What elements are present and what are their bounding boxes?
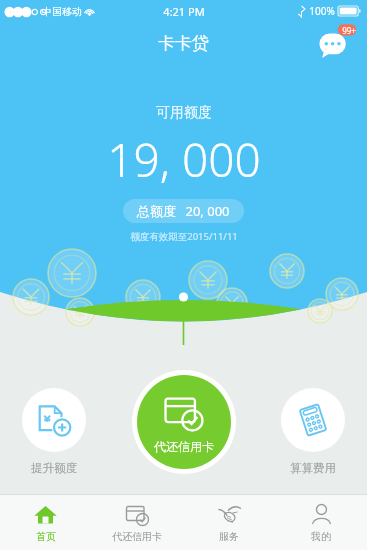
staticText: 4:21 PM [163,4,205,19]
button[interactable]: 服务 [183,495,275,550]
staticText: 99+ [342,25,356,36]
staticText: 额度有效期至2015/11/11 [130,230,238,243]
staticText: 代还信用卡 [112,530,162,543]
staticText: 可用额度 [156,104,212,122]
button[interactable]: 代还信用卡 [91,495,183,550]
staticText: 中国移动 [42,5,82,18]
staticText: 总额度 [137,203,176,219]
staticText: 首页 [36,530,56,543]
staticText: 卡卡贷 [158,33,209,54]
button[interactable]: 首页 [0,495,91,550]
staticText: 算算费用 [290,461,336,475]
button[interactable]: 总额度 [123,199,244,223]
button[interactable]: 提升额度 [22,388,86,475]
button[interactable]: 代还信用卡 [132,370,236,474]
button[interactable]: 算算费用 [281,388,345,475]
staticText: 代还信用卡 [154,439,214,454]
staticText: 我的 [311,530,331,543]
staticText: 提升额度 [31,461,77,475]
staticText: 19, 000 [107,128,261,191]
staticText: 20, 000 [185,202,230,220]
staticText: 服务 [219,530,239,543]
staticText: 100% [309,4,335,18]
button[interactable]: Messages, 99+ unread [317,23,357,63]
button[interactable]: 我的 [275,495,367,550]
